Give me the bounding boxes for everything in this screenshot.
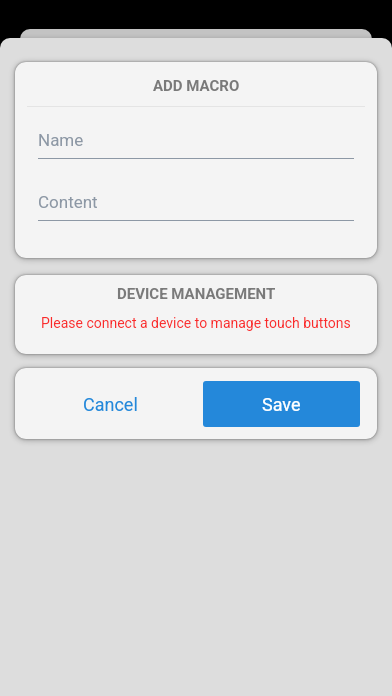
button[interactable]: Save [203,381,360,427]
staticText: Content [38,192,98,212]
staticText: Name [38,130,84,150]
staticText: Cancel [83,394,138,415]
button[interactable]: Name [38,130,354,159]
staticText: Save [262,394,301,415]
staticText: DEVICE MANAGEMENT [117,285,276,303]
staticText: Please connect a device to manage touch … [41,315,351,331]
button[interactable]: Cancel [23,381,197,427]
button[interactable]: Content [38,192,354,221]
staticText: ADD MACRO [153,77,240,95]
